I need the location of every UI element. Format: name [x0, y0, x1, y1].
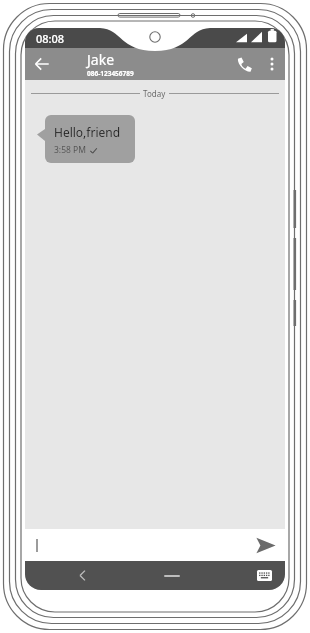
button[interactable]: More options [259, 48, 285, 80]
staticText: 086-123456789 [87, 69, 134, 78]
button[interactable]: Hello,friend [45, 115, 135, 163]
staticText: 3:58 PM [54, 144, 86, 156]
button[interactable]: Back [69, 561, 95, 590]
button[interactable]: Home [155, 561, 189, 590]
button[interactable]: Jake [59, 50, 229, 78]
button[interactable] [25, 529, 247, 561]
staticText: Today [143, 88, 166, 99]
staticText: Hello,friend [54, 124, 121, 140]
button[interactable]: Send [247, 529, 285, 561]
staticText: 08:08 [36, 31, 65, 46]
button[interactable]: Call [229, 48, 259, 80]
button[interactable]: Back [25, 48, 59, 80]
button[interactable]: Keyboard [249, 561, 279, 590]
staticText: Jake [87, 50, 115, 69]
